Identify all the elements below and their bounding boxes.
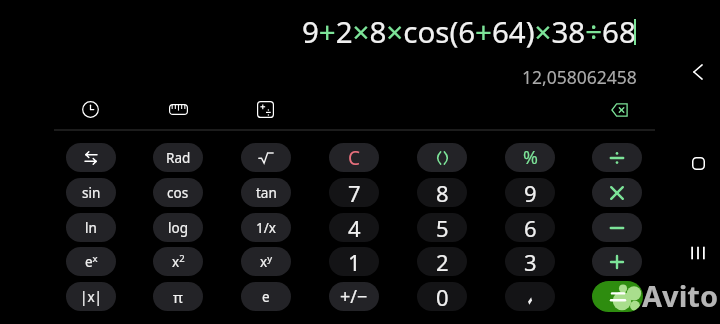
button[interactable]: |x| xyxy=(66,282,116,311)
staticText: log xyxy=(168,219,188,237)
staticText: 7 xyxy=(348,178,361,207)
button[interactable]: Swap xyxy=(66,143,116,172)
button[interactable]: Backspace xyxy=(605,96,633,124)
staticText: ex xyxy=(85,252,98,271)
staticText: 1 xyxy=(348,247,361,276)
staticText: 8 xyxy=(436,178,449,207)
button[interactable]: 6 xyxy=(505,213,555,242)
button[interactable]: Unit converter xyxy=(164,95,192,123)
button[interactable]: ex xyxy=(66,247,116,276)
button[interactable]: 7 xyxy=(329,178,379,207)
staticText: π xyxy=(173,287,183,307)
button[interactable]: Square root xyxy=(241,143,291,172)
staticText: 4 xyxy=(348,213,361,242)
staticText: 3 xyxy=(524,247,537,276)
staticText: Avito xyxy=(642,276,719,315)
button[interactable]: xy xyxy=(241,247,291,276)
button[interactable]: Back xyxy=(684,58,712,86)
button[interactable]: ln xyxy=(66,213,116,242)
button[interactable]: +/− xyxy=(329,282,379,311)
button[interactable]: Equals xyxy=(592,282,642,311)
button[interactable]: sin xyxy=(66,178,116,207)
staticText: 12,058062458 xyxy=(522,65,637,87)
button[interactable]: , xyxy=(505,282,555,311)
staticText: +/− xyxy=(340,284,368,309)
button[interactable]: 2 xyxy=(417,247,467,276)
button[interactable]: 3 xyxy=(505,247,555,276)
button[interactable]: History xyxy=(76,95,104,123)
button[interactable]: Plus xyxy=(592,247,642,276)
staticText: 1/x xyxy=(256,219,276,237)
button[interactable]: tan xyxy=(241,178,291,207)
staticText: x2 xyxy=(172,252,185,271)
staticText: 0 xyxy=(436,282,449,311)
button[interactable]: cos xyxy=(153,178,203,207)
button[interactable]: Rad xyxy=(153,143,203,172)
staticText: sin xyxy=(82,184,101,202)
staticText: 6 xyxy=(524,213,537,242)
staticText: % xyxy=(523,145,538,170)
button[interactable]: Calculator mode xyxy=(251,95,279,123)
button[interactable]: 0 xyxy=(417,282,467,311)
staticText: e xyxy=(262,288,270,306)
staticText: tan xyxy=(256,184,277,202)
button[interactable]: Divide xyxy=(592,143,642,172)
staticText: 5 xyxy=(436,213,449,242)
button[interactable]: e xyxy=(241,282,291,311)
button[interactable]: 5 xyxy=(417,213,467,242)
button[interactable]: 9 xyxy=(505,178,555,207)
button[interactable]: Recents xyxy=(684,239,712,267)
button[interactable]: 1/x xyxy=(241,213,291,242)
staticText: cos xyxy=(167,184,189,202)
button[interactable]: Home xyxy=(684,149,712,177)
staticText: ln xyxy=(85,219,97,237)
button[interactable]: log xyxy=(153,213,203,242)
staticText: |x| xyxy=(80,288,103,306)
button[interactable]: π xyxy=(153,282,203,311)
button[interactable]: x2 xyxy=(153,247,203,276)
button[interactable]: Parentheses xyxy=(417,143,467,172)
button[interactable]: Multiply xyxy=(592,178,642,207)
button[interactable]: Minus xyxy=(592,213,642,242)
staticText: C xyxy=(348,145,361,171)
staticText: 2 xyxy=(436,247,449,276)
button[interactable]: % xyxy=(505,143,555,172)
staticText: 9 xyxy=(524,178,537,207)
button[interactable]: 8 xyxy=(417,178,467,207)
button[interactable]: 1 xyxy=(329,247,379,276)
staticText: Rad xyxy=(166,149,191,167)
button[interactable]: C xyxy=(329,143,379,172)
staticText: 9+2×8×cos(6+64)×38÷68 xyxy=(302,11,636,51)
staticText: xy xyxy=(260,252,272,271)
button[interactable]: 4 xyxy=(329,213,379,242)
